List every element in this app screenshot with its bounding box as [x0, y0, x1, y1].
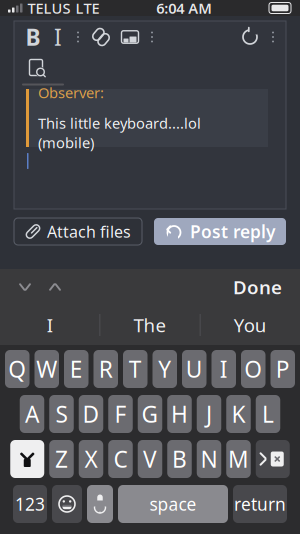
- staticText: Q: [8, 354, 26, 384]
- staticText: D: [82, 399, 99, 429]
- button[interactable]: 123: [13, 485, 47, 523]
- button[interactable]: C: [108, 440, 133, 478]
- staticText: B: [172, 444, 187, 474]
- button[interactable]: I: [0, 305, 99, 345]
- button[interactable]: J: [197, 395, 221, 433]
- button[interactable]: Y: [152, 350, 177, 388]
- button[interactable]: T: [123, 350, 147, 388]
- staticText: S: [55, 399, 67, 429]
- button[interactable]: B: [167, 440, 192, 478]
- staticText: I: [54, 22, 62, 52]
- staticText: G: [141, 399, 158, 429]
- staticText: O: [244, 354, 262, 384]
- button[interactable]: Undo: [236, 22, 264, 52]
- button[interactable]: Delete: [256, 440, 290, 478]
- button[interactable]: Q: [5, 350, 29, 388]
- button[interactable]: Shift: [10, 440, 44, 478]
- staticText: Y: [158, 354, 171, 384]
- staticText: K: [231, 399, 245, 429]
- button[interactable]: Insert link: [86, 22, 116, 52]
- staticText: L: [262, 399, 274, 429]
- staticText: C: [113, 444, 127, 474]
- button[interactable]: Dictate: [87, 485, 113, 523]
- staticText: W: [36, 354, 57, 384]
- button[interactable]: N: [197, 440, 221, 478]
- button[interactable]: V: [138, 440, 162, 478]
- button[interactable]: M: [226, 440, 251, 478]
- staticText: V: [143, 444, 157, 474]
- staticText: LTE: [75, 0, 99, 18]
- button[interactable]: L: [256, 395, 280, 433]
- staticText: T: [129, 354, 142, 384]
- button[interactable]: D: [79, 395, 103, 433]
- button[interactable]: More text options: [70, 22, 86, 52]
- button[interactable]: Next field: [40, 274, 70, 300]
- button[interactable]: You: [201, 305, 300, 345]
- staticText: return: [234, 492, 286, 515]
- button[interactable]: Insert image: [116, 22, 144, 52]
- staticText: A: [25, 399, 39, 429]
- button[interactable]: Attach files: [14, 218, 142, 245]
- staticText: B: [25, 22, 40, 52]
- button[interactable]: Preview: [22, 56, 52, 80]
- staticText: E: [70, 354, 83, 384]
- button[interactable]: Z: [49, 440, 74, 478]
- staticText: Attach files: [47, 221, 131, 242]
- button[interactable]: O: [241, 350, 265, 388]
- button[interactable]: K: [226, 395, 251, 433]
- staticText: TELUS: [27, 0, 70, 18]
- button[interactable]: G: [138, 395, 162, 433]
- staticText: I: [47, 313, 53, 337]
- staticText: N: [200, 444, 217, 474]
- button[interactable]: H: [167, 395, 192, 433]
- button[interactable]: Emoji: [52, 485, 82, 523]
- staticText: Post reply: [190, 220, 275, 243]
- staticText: Done: [233, 275, 282, 299]
- button[interactable]: S: [49, 395, 74, 433]
- button[interactable]: Previous field: [10, 274, 40, 300]
- staticText: space: [149, 492, 196, 515]
- staticText: R: [99, 354, 113, 384]
- staticText: M: [228, 444, 249, 474]
- button[interactable]: P: [270, 350, 295, 388]
- staticText: This little keyboard....lol (mobile): [38, 113, 201, 152]
- button[interactable]: R: [93, 350, 118, 388]
- button[interactable]: Post reply: [154, 218, 286, 245]
- staticText: X: [84, 444, 97, 474]
- staticText: J: [206, 399, 212, 429]
- button[interactable]: The: [100, 305, 200, 345]
- button[interactable]: I: [211, 350, 236, 388]
- button[interactable]: A: [20, 395, 44, 433]
- button[interactable]: E: [64, 350, 88, 388]
- button[interactable]: space: [118, 485, 228, 523]
- button[interactable]: return: [233, 485, 287, 523]
- staticText: 6:04 AM: [156, 0, 212, 18]
- staticText: Z: [55, 444, 68, 474]
- button[interactable]: Done: [227, 274, 288, 300]
- staticText: F: [114, 399, 126, 429]
- button[interactable]: F: [108, 395, 133, 433]
- staticText: 123: [15, 492, 45, 515]
- staticText: H: [171, 399, 188, 429]
- button[interactable]: X: [79, 440, 103, 478]
- staticText: U: [186, 354, 203, 384]
- button[interactable]: I: [46, 22, 70, 52]
- button[interactable]: U: [182, 350, 206, 388]
- staticText: You: [234, 313, 267, 337]
- button[interactable]: More options: [264, 22, 282, 52]
- staticText: I: [220, 354, 228, 384]
- staticText: P: [276, 354, 290, 384]
- staticText: The: [133, 313, 166, 337]
- button[interactable]: W: [34, 350, 59, 388]
- button[interactable]: B: [20, 22, 46, 52]
- button[interactable]: More insert options: [144, 22, 160, 52]
- staticText: Observer:: [38, 83, 104, 102]
